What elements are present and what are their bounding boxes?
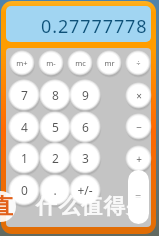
staticText: 0.27777778 — [41, 14, 148, 39]
staticText: 9 — [82, 87, 89, 103]
staticText: +/- — [77, 182, 93, 198]
staticText: 6 — [82, 119, 89, 135]
button[interactable]: 3 — [67, 140, 103, 176]
staticText: m- — [46, 58, 56, 68]
button[interactable]: 2 — [37, 140, 73, 176]
staticText: 0 — [21, 182, 28, 198]
button[interactable]: 5 — [37, 109, 73, 145]
button[interactable]: ÷ — [123, 48, 153, 78]
staticText: 5 — [52, 119, 59, 135]
staticText: m+ — [16, 58, 28, 68]
staticText: 4 — [21, 119, 28, 135]
staticText: mc — [75, 58, 86, 68]
staticText: 什么值得买 — [35, 193, 148, 219]
button[interactable]: × — [123, 80, 154, 111]
staticText: 7 — [21, 87, 28, 103]
staticText: 2 — [52, 150, 59, 166]
staticText: 直 — [0, 193, 13, 221]
button[interactable]: 9 — [67, 77, 103, 113]
button[interactable]: 6 — [67, 109, 103, 145]
staticText: 1 — [21, 150, 28, 166]
button[interactable]: 7 — [6, 77, 42, 113]
button[interactable]: − — [123, 111, 154, 142]
button[interactable]: 0 — [6, 172, 42, 208]
button[interactable]: 1 — [6, 140, 42, 176]
staticText: 8 — [52, 87, 59, 103]
button[interactable]: mr — [94, 48, 124, 78]
staticText: − — [136, 120, 142, 134]
staticText: × — [136, 89, 142, 103]
staticText: = — [135, 188, 142, 203]
button[interactable]: + — [123, 143, 154, 174]
button[interactable]: . — [37, 172, 73, 208]
button[interactable]: 4 — [6, 109, 42, 145]
staticText: . — [53, 182, 57, 198]
button[interactable]: +/- — [67, 172, 103, 208]
button[interactable]: 8 — [37, 77, 73, 113]
staticText: 3 — [82, 150, 89, 166]
button[interactable]: m- — [36, 48, 66, 78]
button[interactable]: Equals — [128, 170, 149, 224]
staticText: ÷ — [136, 58, 141, 68]
staticText: + — [136, 152, 142, 166]
button[interactable]: mc — [65, 48, 95, 78]
staticText: mr — [104, 58, 115, 68]
button[interactable]: m+ — [7, 48, 37, 78]
